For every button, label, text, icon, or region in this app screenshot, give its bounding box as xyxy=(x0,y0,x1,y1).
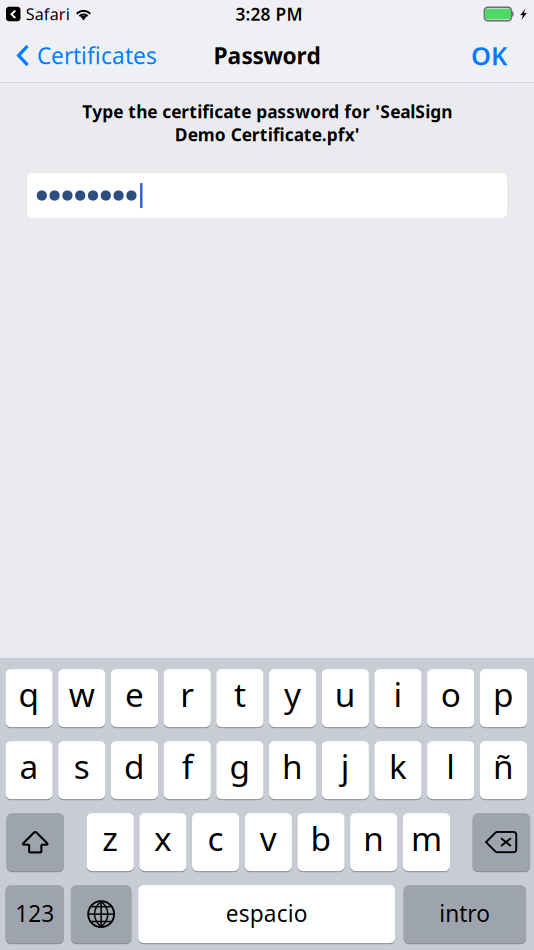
button[interactable]: OK xyxy=(455,28,534,82)
button[interactable]: h xyxy=(269,740,316,800)
staticText: Certificates xyxy=(37,40,157,70)
button[interactable]: ñ xyxy=(480,740,527,800)
staticText: u xyxy=(335,672,356,716)
button[interactable]: r xyxy=(164,668,211,728)
button[interactable]: d xyxy=(111,740,158,800)
staticText: x xyxy=(154,816,172,860)
staticText: c xyxy=(208,816,224,860)
button[interactable]: y xyxy=(269,668,316,728)
staticText: OK xyxy=(471,39,507,72)
button[interactable]: b xyxy=(297,812,345,872)
button[interactable]: w xyxy=(58,668,105,728)
staticText: j xyxy=(341,744,350,788)
staticText: Type the certificate password for 'SealS… xyxy=(82,100,452,146)
staticText: h xyxy=(282,744,303,788)
staticText: o xyxy=(441,672,461,716)
staticText: n xyxy=(363,816,384,860)
button[interactable]: v xyxy=(245,812,292,872)
staticText: m xyxy=(411,816,442,860)
button[interactable]: q xyxy=(5,668,53,728)
staticText: f xyxy=(182,744,193,788)
button[interactable]: Delete xyxy=(473,812,530,872)
button[interactable]: a xyxy=(5,740,53,800)
staticText: y xyxy=(284,672,301,716)
staticText: l xyxy=(446,744,455,788)
button[interactable]: o xyxy=(427,668,474,728)
staticText: ñ xyxy=(493,744,514,788)
staticText: z xyxy=(102,816,118,860)
button[interactable]: intro xyxy=(404,884,526,944)
staticText: e xyxy=(125,672,144,716)
button[interactable]: Certificates xyxy=(0,28,167,82)
button[interactable]: x xyxy=(139,812,186,872)
staticText: d xyxy=(124,744,145,788)
staticText: p xyxy=(493,672,514,716)
button[interactable]: p xyxy=(480,668,527,728)
button[interactable]: j xyxy=(322,740,369,800)
button[interactable]: m xyxy=(403,812,450,872)
staticText: a xyxy=(20,744,39,788)
button[interactable]: s xyxy=(58,740,105,800)
staticText: w xyxy=(69,672,95,716)
staticText: Password xyxy=(213,40,320,70)
button[interactable]: f xyxy=(164,740,211,800)
button[interactable]: g xyxy=(216,740,263,800)
staticText: t xyxy=(234,672,246,716)
button[interactable]: espacio xyxy=(138,884,395,944)
staticText: espacio xyxy=(226,898,308,928)
button[interactable]: i xyxy=(374,668,422,728)
staticText: v xyxy=(260,816,277,860)
staticText: s xyxy=(74,744,90,788)
button[interactable]: 123 xyxy=(5,884,64,944)
staticText: Safari xyxy=(26,3,70,25)
staticText: 3:28 PM xyxy=(235,2,302,25)
button[interactable]: c xyxy=(192,812,239,872)
button[interactable]: t xyxy=(216,668,263,728)
button[interactable]: z xyxy=(87,812,134,872)
staticText: k xyxy=(389,744,407,788)
button[interactable]: l xyxy=(427,740,474,800)
staticText: r xyxy=(180,672,194,716)
button[interactable]: Next keyboard xyxy=(71,884,131,944)
staticText: g xyxy=(229,744,250,788)
button[interactable]: n xyxy=(350,812,397,872)
button[interactable]: k xyxy=(374,740,422,800)
button[interactable]: u xyxy=(322,668,369,728)
button[interactable]: e xyxy=(111,668,158,728)
button[interactable]: Shift xyxy=(6,812,64,872)
staticText: intro xyxy=(439,898,490,928)
staticText: i xyxy=(393,672,402,716)
staticText: 123 xyxy=(15,898,54,928)
staticText: q xyxy=(19,672,40,716)
staticText: b xyxy=(310,816,331,860)
